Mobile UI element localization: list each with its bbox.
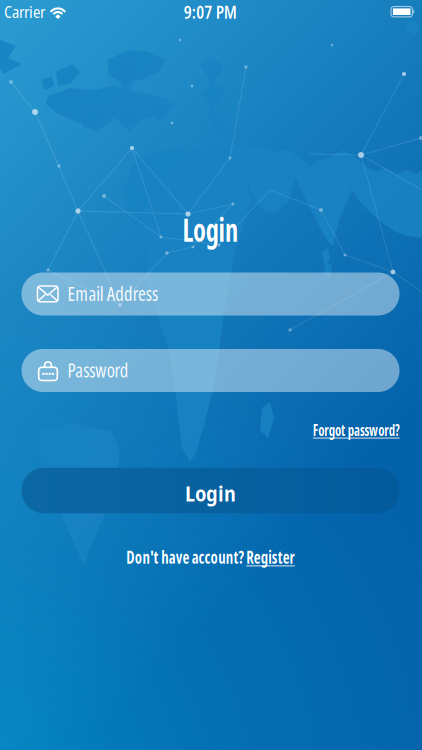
button[interactable]: Login <box>21 468 399 513</box>
staticText: Login <box>175 207 245 251</box>
staticText: Password <box>67 355 137 383</box>
staticText: Carrier <box>4 0 45 23</box>
staticText: Email Address <box>67 279 171 307</box>
button[interactable]: Register <box>252 545 309 569</box>
button[interactable]: Forgot password? <box>285 418 399 441</box>
button[interactable]: Email Address <box>21 272 399 315</box>
staticText: 9:07 PM <box>180 0 240 24</box>
staticText: Register <box>252 545 309 569</box>
staticText: Forgot password? <box>285 418 399 441</box>
button[interactable]: Password <box>21 349 399 392</box>
staticText: Don't have account? <box>111 545 252 569</box>
staticText: Login <box>185 479 236 507</box>
